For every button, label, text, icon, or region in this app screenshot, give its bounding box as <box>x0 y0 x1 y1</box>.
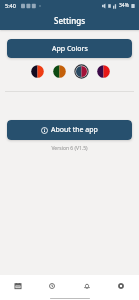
staticText: 34% <box>119 2 129 9</box>
button[interactable]: Colour theme option <box>74 64 89 79</box>
button[interactable]: Colour theme option <box>52 64 67 79</box>
button[interactable]: Colour theme option <box>96 64 111 79</box>
staticText: Version 6 (V1.5) <box>51 145 88 152</box>
button[interactable]: Clock <box>37 275 67 296</box>
button[interactable]: Notifications <box>72 275 102 296</box>
button[interactable]: App Colors <box>7 39 132 58</box>
button[interactable]: Calendar <box>3 275 33 296</box>
button[interactable]: About the app <box>7 120 132 140</box>
staticText: Settings <box>54 15 86 26</box>
button[interactable]: Colour theme option <box>30 64 45 79</box>
staticText: About the app <box>51 125 98 135</box>
button[interactable]: Settings <box>106 275 136 296</box>
staticText: App Colors <box>52 44 88 54</box>
staticText: 5:40 <box>5 2 16 9</box>
